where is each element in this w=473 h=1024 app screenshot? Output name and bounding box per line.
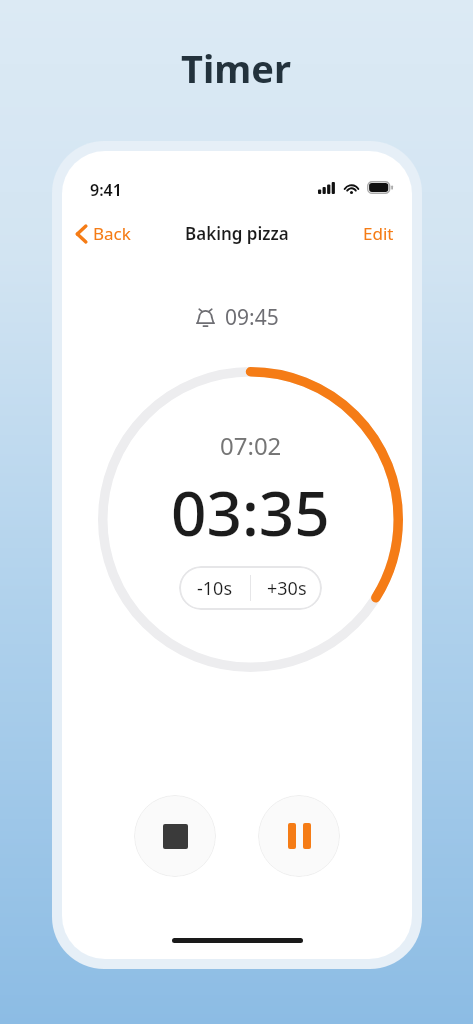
button[interactable]: Edit — [355, 217, 402, 250]
staticText: Back — [93, 222, 131, 245]
staticText: Baking pizza — [185, 222, 289, 245]
button[interactable]: Pause — [258, 795, 340, 877]
staticText: -10s — [197, 576, 233, 601]
staticText: 03:35 — [171, 470, 330, 554]
staticText: Timer — [181, 42, 292, 94]
staticText: 09:45 — [225, 303, 279, 332]
button[interactable]: Back — [68, 217, 139, 250]
button[interactable]: Stop — [134, 795, 216, 877]
button[interactable]: +30s — [251, 566, 322, 610]
button[interactable]: -10s — [179, 566, 250, 610]
staticText: 07:02 — [220, 429, 282, 462]
staticText: Edit — [363, 222, 394, 245]
staticText: +30s — [267, 576, 307, 601]
staticText: 9:41 — [90, 179, 122, 201]
